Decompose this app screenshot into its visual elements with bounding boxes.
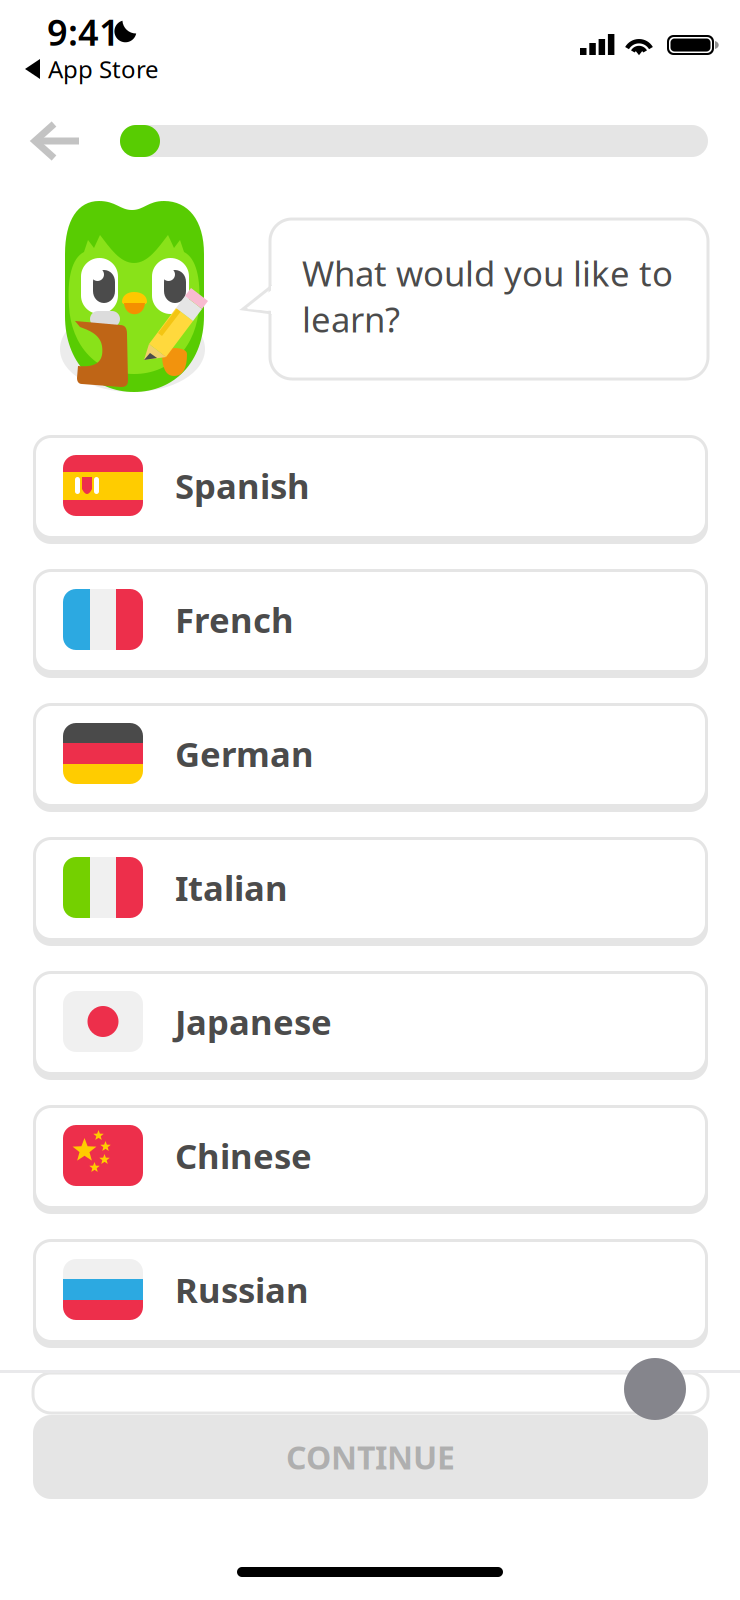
staticText: Russian [175,1266,309,1312]
staticText: Spanish [175,462,310,508]
staticText: French [175,596,294,642]
staticText: Italian [175,864,288,910]
staticText: German [175,730,314,776]
staticText: App Store [48,53,159,85]
button[interactable]: Spanish [33,435,708,544]
button[interactable]: Chinese [33,1105,708,1214]
button[interactable]: German [33,703,708,812]
staticText: What would you like to learn? [302,250,673,342]
button[interactable]: Russian [33,1239,708,1348]
button[interactable]: Italian [33,837,708,946]
button[interactable]: CONTINUE [33,1415,708,1499]
staticText: CONTINUE [286,1436,455,1478]
button[interactable]: Japanese [33,971,708,1080]
staticText: Japanese [175,998,332,1044]
button[interactable]: Back [32,121,82,162]
button[interactable]: French [33,569,708,678]
staticText: Chinese [175,1132,312,1178]
staticText: 9:41 [47,8,120,56]
